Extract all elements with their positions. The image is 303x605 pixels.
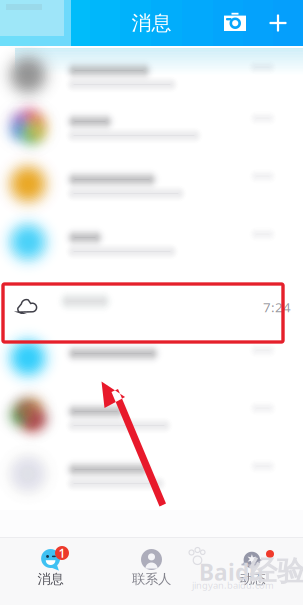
button[interactable] [0, 104, 303, 162]
button[interactable]: Camera [219, 7, 251, 39]
button[interactable]: 动态 [202, 537, 303, 605]
button[interactable]: 联系人 [101, 537, 202, 605]
staticText: 联系人 [132, 571, 171, 587]
staticText: Baidu [199, 557, 264, 587]
button[interactable] [0, 162, 303, 220]
staticText: 7:24 [263, 298, 291, 316]
staticText: 1 [58, 545, 65, 561]
button[interactable]: 1 [0, 537, 101, 605]
staticText: 经验 [249, 554, 303, 588]
button[interactable] [0, 394, 303, 452]
button[interactable] [0, 220, 303, 278]
button[interactable] [0, 336, 303, 394]
staticText: 消息 [37, 571, 63, 587]
staticText: jingyan.baidu.com [192, 579, 274, 591]
button[interactable] [0, 452, 303, 510]
staticText: 动态 [239, 571, 265, 587]
button[interactable]: New chat [262, 7, 294, 39]
staticText: 消息 [131, 11, 171, 35]
button[interactable]: 7:24 [0, 278, 303, 336]
